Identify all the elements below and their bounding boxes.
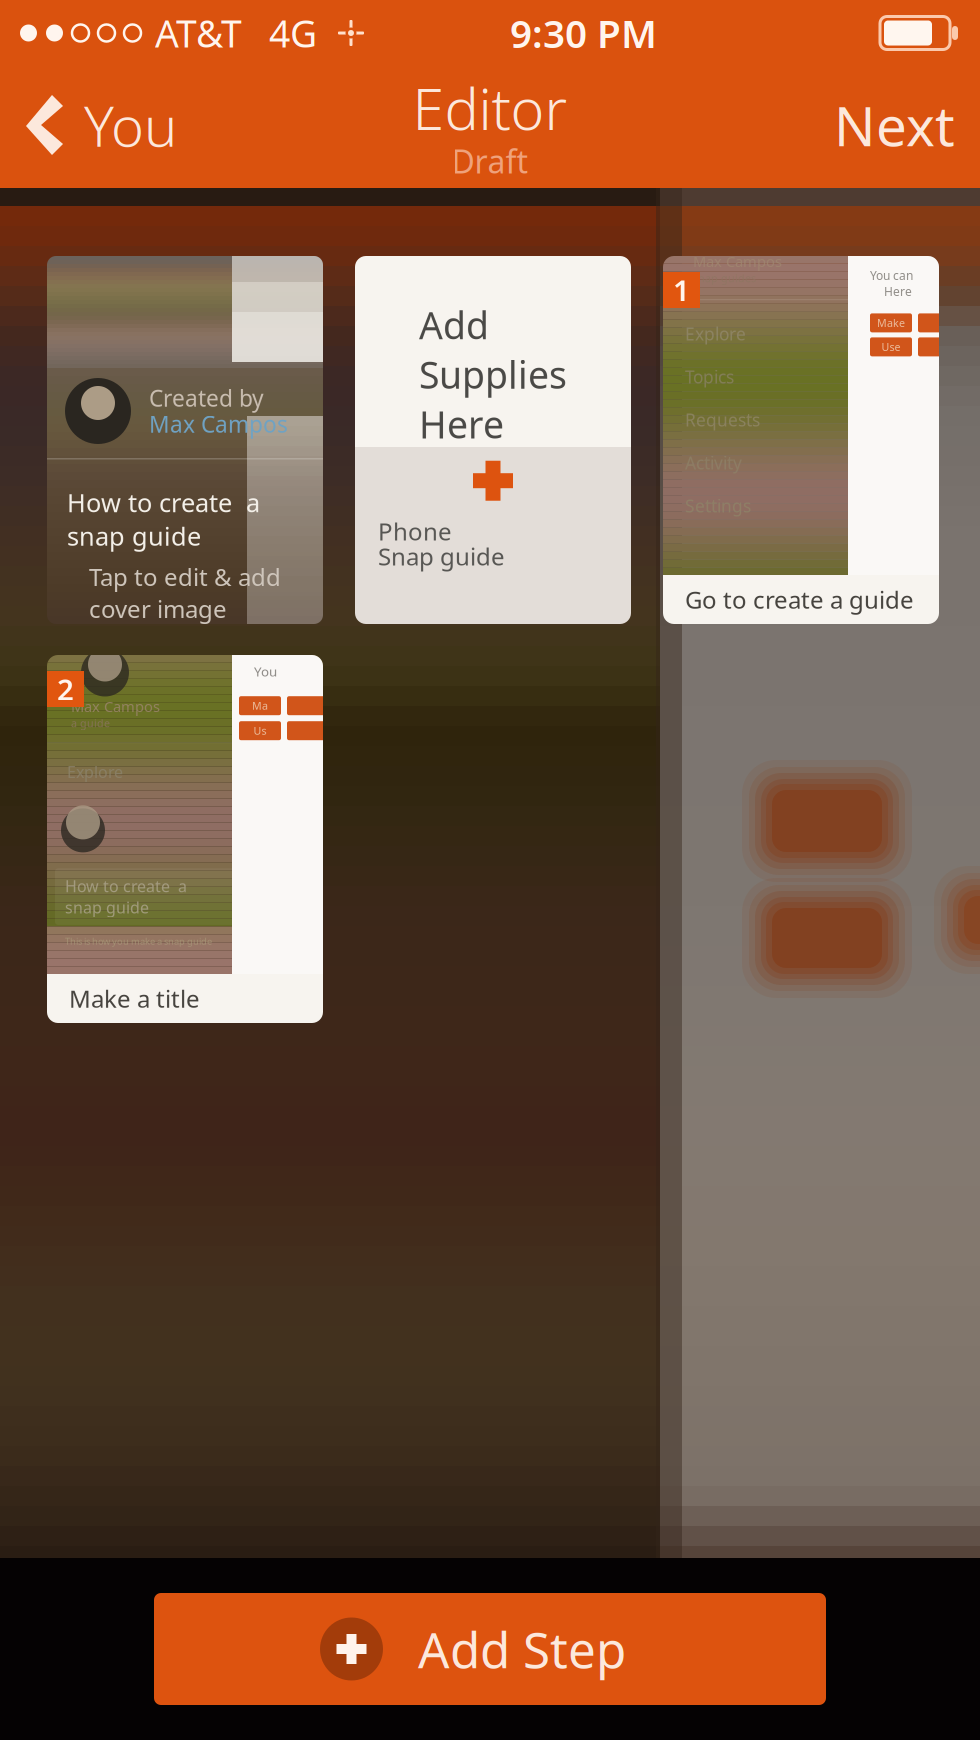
staticText: a guide bbox=[71, 716, 110, 730]
staticText: How to create a bbox=[65, 875, 187, 897]
staticText: Settings bbox=[685, 494, 751, 517]
staticText: Explore bbox=[685, 322, 746, 345]
staticText: Phone bbox=[378, 515, 452, 547]
staticText: Snap guide bbox=[378, 540, 505, 572]
button[interactable]: Created by bbox=[47, 256, 323, 624]
button[interactable]: Max Campos bbox=[47, 655, 323, 1023]
staticText: Make bbox=[877, 316, 905, 330]
button[interactable]: Next bbox=[809, 66, 980, 184]
staticText: Max Campos bbox=[149, 409, 288, 439]
staticText: Make a title bbox=[69, 983, 200, 1014]
staticText: Created by bbox=[149, 383, 264, 413]
staticText: Go to create a guide bbox=[685, 584, 914, 615]
button[interactable]: Add Step bbox=[154, 1593, 826, 1705]
staticText: You bbox=[254, 662, 277, 680]
staticText: 9:30 PM bbox=[510, 7, 657, 59]
staticText: Explore bbox=[67, 761, 123, 782]
staticText: AT&T bbox=[155, 8, 242, 58]
staticText: Next bbox=[834, 89, 955, 161]
staticText: Us bbox=[253, 724, 266, 738]
staticText: Activity bbox=[685, 451, 742, 474]
staticText: 1 bbox=[673, 270, 690, 309]
staticText: Draft bbox=[451, 140, 528, 182]
button[interactable]: You bbox=[0, 66, 199, 184]
staticText: Add Step bbox=[418, 1616, 626, 1682]
staticText: How to create a snap guide bbox=[67, 485, 260, 553]
staticText: You bbox=[84, 88, 177, 162]
staticText: Tap to edit & add cover image bbox=[89, 561, 281, 624]
button[interactable]: Max Campos bbox=[663, 256, 939, 624]
staticText: Max Campos bbox=[693, 251, 782, 271]
staticText: Here bbox=[884, 283, 912, 299]
staticText: snap guide bbox=[65, 897, 149, 918]
staticText: Ma bbox=[252, 699, 268, 713]
staticText: Add Supplies Here bbox=[419, 300, 567, 449]
staticText: Requests bbox=[685, 408, 760, 431]
staticText: You can bbox=[870, 267, 913, 283]
staticText: Editor bbox=[412, 70, 567, 146]
staticText: 2 bbox=[57, 669, 74, 708]
staticText: Use bbox=[881, 340, 900, 354]
staticText: This is how you make a snap guide bbox=[65, 935, 212, 947]
staticText: Max Campos bbox=[71, 696, 160, 716]
staticText: 4G bbox=[269, 8, 317, 58]
staticText: snap guides bbox=[693, 271, 756, 285]
staticText: Topics bbox=[685, 365, 734, 388]
button[interactable]: Add Supplies Here bbox=[355, 256, 631, 624]
